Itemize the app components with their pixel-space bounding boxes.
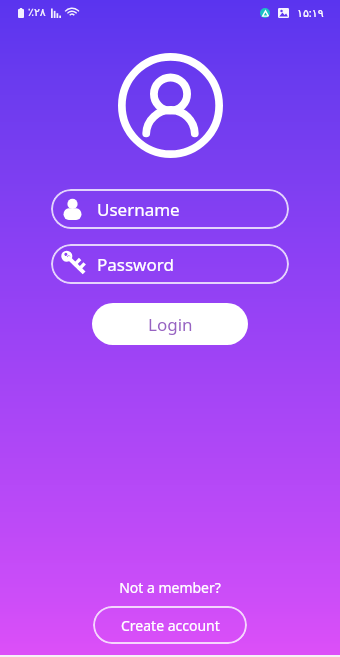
other: Profile avatar (118, 53, 223, 158)
staticText: Login (148, 313, 193, 336)
staticText: ۱۵:۱۹ (297, 5, 324, 20)
staticText: Password (97, 253, 174, 276)
staticText: Create account (121, 616, 220, 635)
staticText: Username (97, 198, 180, 221)
staticText: Not a member? (0, 578, 340, 597)
button[interactable]: Login (92, 303, 248, 345)
button[interactable]: Create account (93, 606, 247, 644)
button[interactable]: Password (51, 244, 289, 284)
staticText: ٪۲۸ (28, 6, 46, 19)
button[interactable]: Username (51, 189, 289, 229)
